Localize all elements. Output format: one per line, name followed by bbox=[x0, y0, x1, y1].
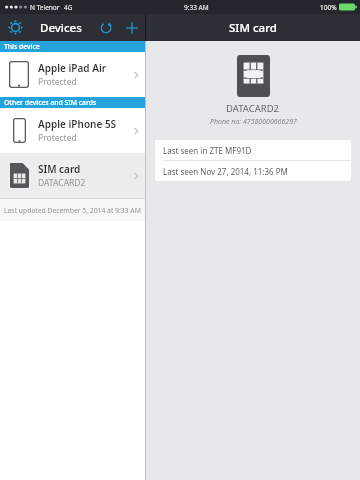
staticText: DATACARD2 bbox=[38, 177, 86, 189]
button[interactable]: Refresh bbox=[93, 15, 119, 41]
button[interactable]: SIM card bbox=[0, 153, 145, 198]
staticText: Phone no: 47580000666297 bbox=[210, 117, 297, 127]
staticText: Apple iPad Air bbox=[38, 61, 107, 75]
staticText: SIM card bbox=[229, 20, 277, 36]
staticText: Other devices and SIM cards bbox=[4, 98, 97, 107]
staticText: DATACARD2 bbox=[226, 102, 280, 115]
staticText: 9:33 AM bbox=[184, 3, 209, 12]
button[interactable]: Apple iPad Air bbox=[0, 52, 145, 97]
staticText: Apple iPhone 5S bbox=[38, 117, 117, 131]
staticText: This device bbox=[4, 42, 40, 51]
button[interactable]: Add device bbox=[119, 15, 145, 41]
button[interactable]: Last seen in ZTE MF91D bbox=[155, 140, 351, 160]
staticText: N Telenor bbox=[30, 3, 60, 12]
button[interactable]: Settings bbox=[0, 14, 30, 41]
staticText: 4G bbox=[64, 3, 73, 12]
staticText: 100% bbox=[320, 3, 337, 12]
button[interactable]: Last seen Nov 27, 2014, 11:36 PM bbox=[155, 161, 351, 181]
staticText: Protected bbox=[38, 76, 77, 88]
button[interactable]: Apple iPhone 5S bbox=[0, 108, 145, 153]
staticText: Last seen Nov 27, 2014, 11:36 PM bbox=[163, 166, 288, 177]
staticText: Last seen in ZTE MF91D bbox=[163, 145, 252, 156]
staticText: Last updated December 5, 2014 at 9:33 AM bbox=[4, 206, 141, 215]
staticText: SIM card bbox=[38, 162, 81, 176]
staticText: Protected bbox=[38, 132, 77, 144]
staticText: Devices bbox=[40, 20, 82, 36]
